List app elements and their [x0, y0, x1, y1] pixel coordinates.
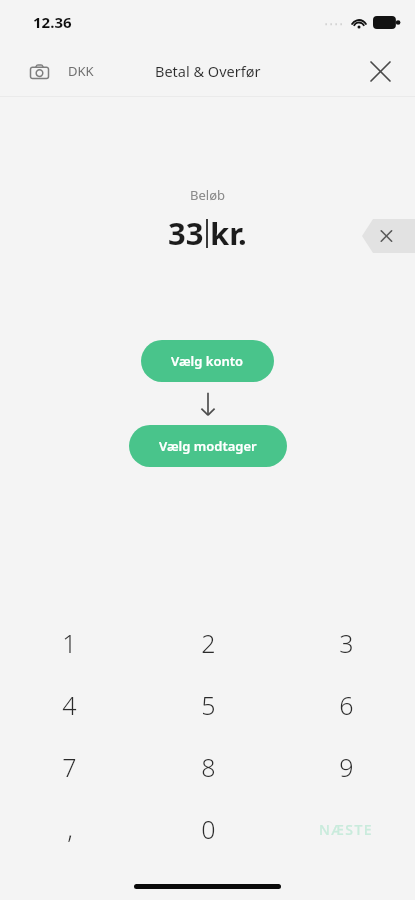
button[interactable]: 8 [139, 736, 277, 798]
button[interactable]: 5 [139, 674, 277, 736]
staticText: 33 [168, 212, 204, 254]
staticText: Beløb [190, 186, 225, 204]
staticText: 4 [62, 688, 77, 722]
staticText: Vælg konto [171, 352, 244, 370]
staticText: 5 [201, 688, 216, 722]
staticText: NÆSTE [319, 820, 373, 839]
staticText: 12.36 [33, 12, 72, 32]
button[interactable]: 7 [0, 736, 139, 798]
button[interactable]: 9 [277, 736, 415, 798]
button[interactable]: 3 [277, 612, 415, 674]
button[interactable]: Slet [362, 219, 415, 253]
staticText: kr. [210, 212, 247, 254]
button[interactable]: , [0, 798, 139, 860]
button[interactable]: 0 [139, 798, 277, 860]
button[interactable]: NÆSTE [277, 798, 415, 860]
staticText: DKK [68, 62, 94, 80]
button[interactable]: 6 [277, 674, 415, 736]
button[interactable]: Vælg modtager [129, 425, 287, 467]
staticText: , [67, 812, 73, 846]
button[interactable]: 2 [139, 612, 277, 674]
staticText: 0 [201, 812, 216, 846]
button[interactable]: Scan [24, 56, 54, 86]
staticText: Betal & Overfør [155, 61, 261, 81]
staticText: 2 [201, 626, 216, 660]
button[interactable]: 1 [0, 612, 139, 674]
button[interactable]: Luk [363, 54, 397, 88]
staticText: 1 [62, 626, 77, 660]
button[interactable]: 4 [0, 674, 139, 736]
button[interactable]: Vælg konto [141, 340, 274, 382]
staticText: 9 [339, 750, 354, 784]
staticText: 7 [62, 750, 77, 784]
staticText: Vælg modtager [159, 437, 257, 455]
staticText: 8 [201, 750, 216, 784]
staticText: 6 [339, 688, 354, 722]
staticText: 3 [339, 626, 354, 660]
button[interactable]: DKK [60, 56, 102, 86]
